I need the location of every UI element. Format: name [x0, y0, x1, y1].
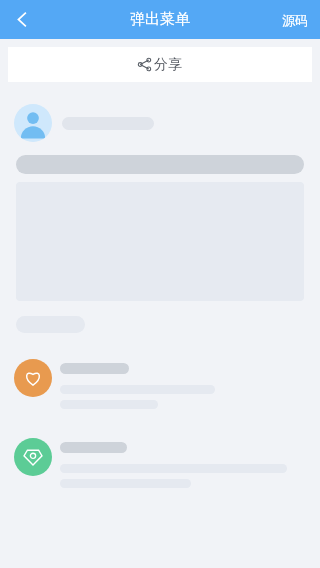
button[interactable]: 分享	[8, 47, 312, 82]
other: Favorite	[14, 359, 52, 397]
button[interactable]: Favorite	[14, 359, 306, 409]
button[interactable]: 源码	[270, 0, 320, 39]
button[interactable]: Back	[0, 0, 44, 39]
button[interactable]: Location	[14, 438, 306, 488]
staticText: 弹出菜单	[130, 10, 190, 29]
staticText: 源码	[282, 12, 308, 28]
other: Location	[14, 438, 52, 476]
staticText: 分享	[154, 56, 182, 74]
